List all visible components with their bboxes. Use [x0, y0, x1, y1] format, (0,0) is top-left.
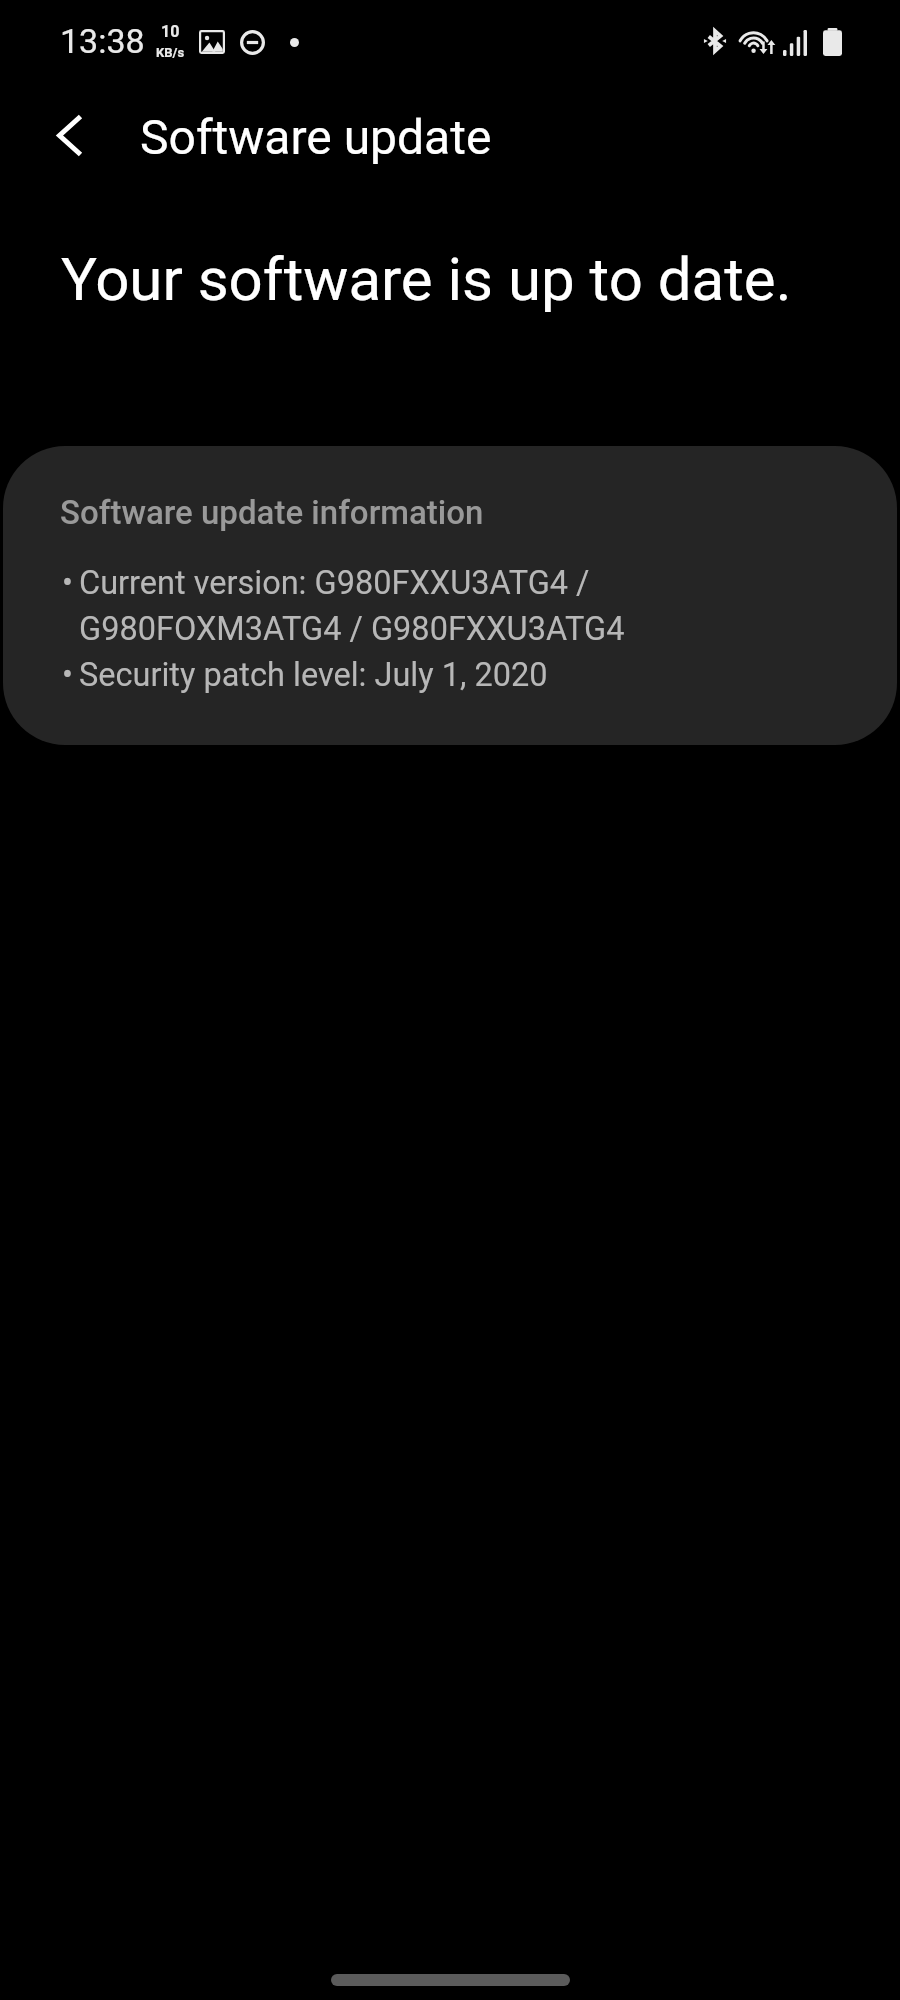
staticText: Security patch level: July 1, 2020 — [79, 650, 548, 696]
staticText: 10 — [161, 22, 180, 41]
staticText: Software update — [140, 110, 492, 166]
staticText: • — [62, 650, 73, 696]
staticText: Current version: G980FXXU3ATG4 / G980FOX… — [79, 558, 625, 650]
staticText: 13:38 — [60, 21, 145, 61]
staticText: Software update information — [60, 494, 484, 532]
staticText: Your software is up to date. — [61, 245, 792, 315]
staticText: KB/s — [156, 45, 185, 60]
staticText: • — [62, 558, 73, 604]
button[interactable]: Navigate up — [28, 93, 112, 177]
